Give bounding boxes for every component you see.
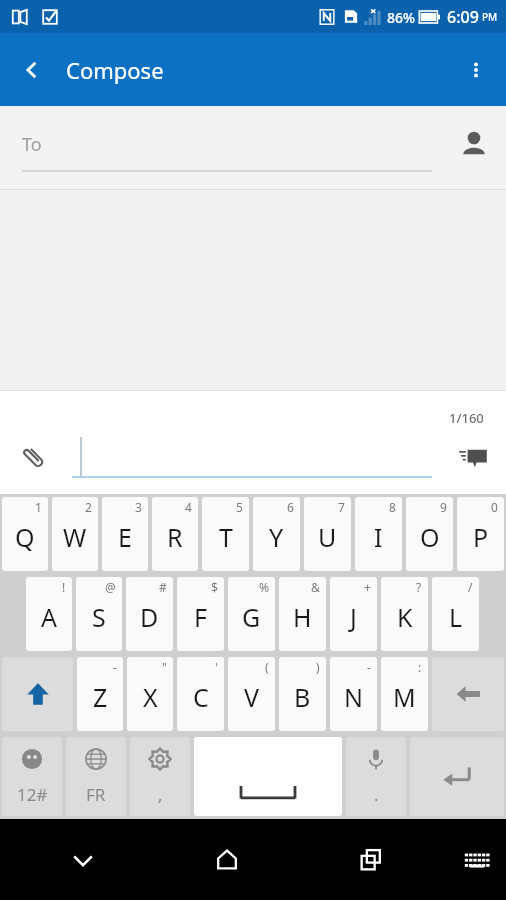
staticText: / <box>468 579 473 595</box>
staticText: Z <box>93 680 108 714</box>
staticText: % <box>259 579 269 595</box>
staticText: X <box>143 680 158 714</box>
staticText: - <box>367 659 371 675</box>
staticText: 5 <box>236 499 243 515</box>
button[interactable]: Pick contact <box>446 116 502 172</box>
button[interactable]: Voice input <box>346 737 406 816</box>
button[interactable]: Space <box>194 737 342 816</box>
staticText: 9 <box>440 499 447 515</box>
staticText: 0 <box>491 499 498 515</box>
button[interactable]: ! <box>26 577 72 651</box>
staticText: + <box>364 579 371 595</box>
staticText: 6:09 <box>447 6 479 28</box>
staticText: I <box>374 520 383 554</box>
staticText: H <box>293 600 312 634</box>
button[interactable]: More options <box>452 46 500 94</box>
staticText: ? <box>416 579 422 595</box>
staticText: M <box>393 680 416 714</box>
staticText: 4 <box>185 499 192 515</box>
staticText: # <box>159 579 167 595</box>
staticText: L <box>449 600 463 634</box>
staticText: R <box>167 520 183 554</box>
staticText: 7 <box>338 499 345 515</box>
button[interactable]: Send <box>446 430 500 484</box>
button[interactable]: # <box>126 577 173 651</box>
button[interactable]: Enter <box>410 737 504 816</box>
button[interactable]: + <box>330 577 377 651</box>
staticText: ' <box>215 659 218 675</box>
staticText: 1 <box>35 499 42 515</box>
staticText: To <box>22 132 42 157</box>
button[interactable]: 6 <box>253 497 300 571</box>
button[interactable]: 0 <box>457 497 504 571</box>
button[interactable]: - <box>77 657 123 731</box>
staticText: 2 <box>85 499 92 515</box>
staticText: 6 <box>287 499 294 515</box>
staticText: 12# <box>17 783 48 806</box>
staticText: 3 <box>135 499 142 515</box>
staticText: 86% <box>387 8 415 27</box>
staticText: . <box>374 783 379 806</box>
staticText: S <box>92 600 106 634</box>
button[interactable]: 2 <box>52 497 98 571</box>
button[interactable]: 1 <box>2 497 48 571</box>
staticText: J <box>350 600 357 634</box>
button[interactable]: ' <box>177 657 224 731</box>
staticText: A <box>41 600 57 634</box>
button[interactable]: / <box>432 577 479 651</box>
button[interactable]: @ <box>76 577 122 651</box>
staticText: ( <box>265 659 269 675</box>
staticText: ! <box>62 579 66 595</box>
button[interactable]: 4 <box>152 497 198 571</box>
button[interactable]: 9 <box>406 497 453 571</box>
staticText: C <box>193 680 209 714</box>
staticText: : <box>418 659 422 675</box>
staticText: K <box>397 600 413 634</box>
staticText: B <box>294 680 311 714</box>
staticText: , <box>158 783 163 806</box>
staticText: Y <box>269 520 284 554</box>
staticText: E <box>118 520 132 554</box>
staticText: F <box>194 600 207 634</box>
button[interactable]: ? <box>381 577 428 651</box>
button[interactable]: ( <box>228 657 275 731</box>
button[interactable]: 8 <box>355 497 402 571</box>
button[interactable]: Settings <box>130 737 190 816</box>
button[interactable]: Recent apps <box>343 832 399 888</box>
button[interactable]: Attach <box>8 431 60 483</box>
staticText: W <box>63 520 87 554</box>
button[interactable]: Backspace <box>432 657 504 731</box>
button[interactable]: & <box>279 577 326 651</box>
button[interactable]: Symbols <box>2 737 62 816</box>
staticText: PM <box>482 10 498 24</box>
staticText: P <box>473 520 489 554</box>
button[interactable]: Switch keyboard <box>454 837 500 883</box>
staticText: 8 <box>389 499 396 515</box>
staticText: @ <box>105 579 116 595</box>
button[interactable]: ) <box>279 657 326 731</box>
button[interactable]: 7 <box>304 497 351 571</box>
staticText: 1/160 <box>449 409 484 427</box>
button[interactable]: " <box>127 657 173 731</box>
staticText: $ <box>211 579 218 595</box>
button[interactable]: Home <box>199 832 255 888</box>
button[interactable]: - <box>330 657 377 731</box>
button[interactable]: % <box>228 577 275 651</box>
staticText: O <box>420 520 440 554</box>
staticText: Compose <box>66 55 164 85</box>
button[interactable]: 5 <box>202 497 249 571</box>
staticText: Q <box>15 520 35 554</box>
staticText: T <box>219 520 233 554</box>
button[interactable]: Shift <box>2 657 73 731</box>
staticText: U <box>318 520 337 554</box>
button[interactable]: $ <box>177 577 224 651</box>
button[interactable]: 3 <box>102 497 148 571</box>
staticText: G <box>242 600 261 634</box>
button[interactable]: : <box>381 657 428 731</box>
staticText: N <box>344 680 364 714</box>
staticText: FR <box>86 783 106 806</box>
staticText: " <box>162 659 167 675</box>
button[interactable]: Language <box>66 737 126 816</box>
button[interactable]: Back <box>8 46 56 94</box>
button[interactable]: Hide keyboard <box>55 832 111 888</box>
